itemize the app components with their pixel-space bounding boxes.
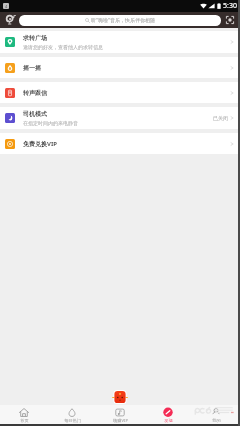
staticText: 求转广场 xyxy=(23,34,47,42)
staticText: 嗨赚VIP xyxy=(113,418,128,424)
staticText: 转声跟信 xyxy=(23,89,47,97)
staticText: 每日热门 xyxy=(64,418,81,423)
staticText: 发现 xyxy=(164,418,173,423)
staticText: 司机模式 xyxy=(23,110,47,118)
button[interactable]: 转声跟信 xyxy=(0,82,240,103)
button[interactable]: 首页 xyxy=(0,405,48,424)
button[interactable]: 求转广场 xyxy=(0,31,240,53)
button[interactable]: 免费兑换VIP xyxy=(0,133,240,154)
staticText: 我的 xyxy=(212,418,221,423)
staticText: 摇一摇 xyxy=(23,64,41,72)
staticText: 已关闭 xyxy=(213,115,228,121)
button[interactable]: 每日热门 xyxy=(48,405,96,424)
button[interactable]: 我的 xyxy=(192,405,240,424)
staticText: 在指定时间内的来电静音 xyxy=(23,120,78,126)
staticText: 5:30 xyxy=(223,1,237,11)
staticText: 免费兑换VIP xyxy=(23,140,57,148)
button[interactable]: 发现 xyxy=(144,405,192,424)
staticText: 听"嗨啦"音乐，快乐伴你相随 xyxy=(91,17,156,24)
staticText: 邀请您的好友，查看他人的求转信息 xyxy=(23,44,103,50)
button[interactable]: 摇一摇 xyxy=(0,57,240,78)
button[interactable]: 嗨赚VIP xyxy=(96,405,144,424)
button[interactable]: 司机模式 xyxy=(0,107,240,129)
button[interactable]: Voice search xyxy=(3,13,17,27)
button[interactable]: 听"嗨啦"音乐，快乐伴你相随 xyxy=(19,15,221,26)
button[interactable]: Scan xyxy=(223,13,237,27)
staticText: 4 xyxy=(5,4,8,9)
staticText: 首页 xyxy=(20,418,29,423)
